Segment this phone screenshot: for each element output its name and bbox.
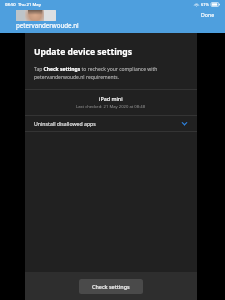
staticText: Update device settings bbox=[34, 46, 133, 58]
staticText: 61% bbox=[201, 2, 209, 7]
staticText: Check settings bbox=[92, 283, 130, 290]
button[interactable]: Profile photo bbox=[16, 10, 56, 21]
staticText: Tap Check settings to recheck your compl… bbox=[34, 66, 188, 80]
button[interactable]: Uninstall disallowed apps bbox=[25, 116, 197, 131]
button[interactable]: iPad mini bbox=[25, 90, 197, 115]
staticText: Done bbox=[201, 11, 215, 18]
staticText: iPad mini bbox=[99, 95, 123, 102]
staticText: 08:50 Thu 21 May bbox=[5, 2, 41, 8]
staticText: Last checked: 21 May 2020 at 08:48 bbox=[76, 104, 146, 110]
staticText: petervanderwoude.nl bbox=[16, 21, 79, 29]
button[interactable]: Done bbox=[199, 10, 217, 19]
staticText: Uninstall disallowed apps bbox=[34, 120, 96, 127]
button[interactable]: Check settings bbox=[79, 279, 143, 294]
